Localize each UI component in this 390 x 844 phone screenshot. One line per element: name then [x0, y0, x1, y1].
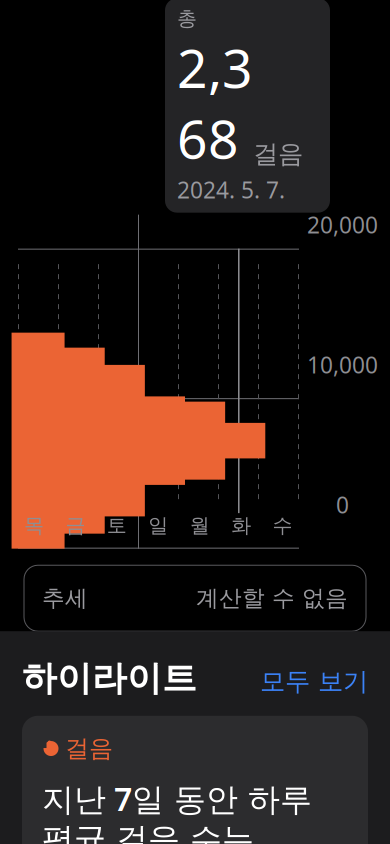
staticText: 걸음: [253, 138, 303, 169]
staticText: 20,000: [307, 210, 378, 240]
staticText: 지난 7일 동안 하루 평균 걸음 수는: [42, 777, 312, 844]
button[interactable]: 모두 보기: [260, 666, 368, 697]
button[interactable]: 추세: [0, 565, 390, 631]
staticText: 금: [65, 513, 85, 538]
staticText: 2,368: [177, 32, 253, 173]
staticText: 목: [24, 513, 44, 538]
staticText: 추세: [42, 584, 88, 612]
staticText: 토: [107, 513, 127, 538]
staticText: 월: [190, 513, 210, 538]
staticText: 2024. 5. 7.: [177, 174, 285, 205]
staticText: 하이라이트: [22, 657, 197, 700]
staticText: 총: [177, 6, 197, 31]
staticText: 0: [336, 490, 349, 520]
staticText: 걸음: [65, 734, 113, 763]
staticText: 10,000: [307, 350, 378, 380]
staticText: 모두 보기: [260, 666, 368, 697]
staticText: 계산할 수 없음: [196, 584, 348, 612]
staticText: 일: [148, 513, 168, 538]
staticText: 화: [231, 513, 251, 538]
staticText: 수: [273, 513, 293, 538]
button[interactable]: 걸음: [0, 716, 390, 844]
